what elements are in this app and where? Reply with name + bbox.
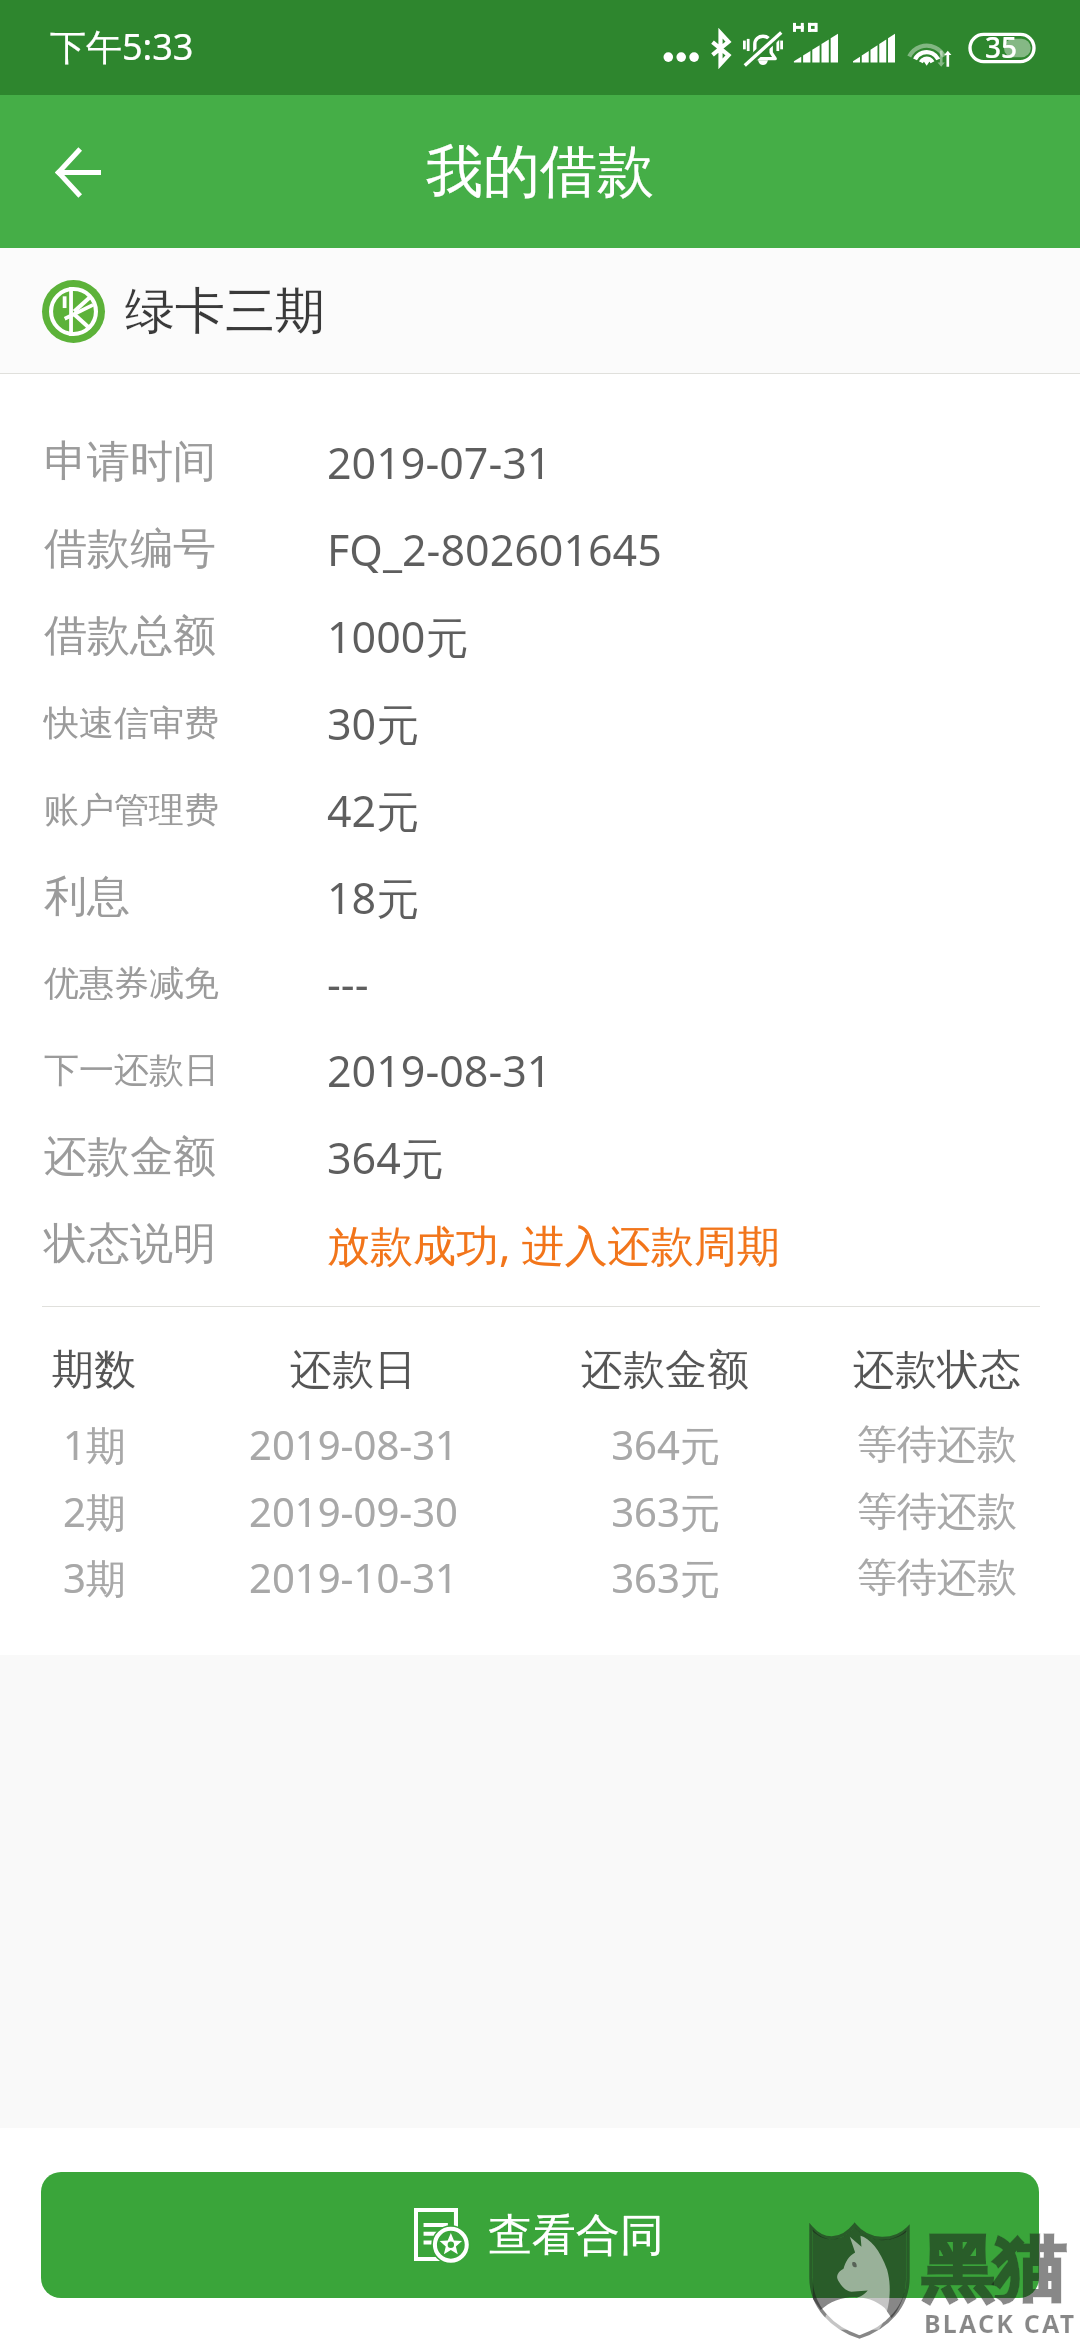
staticText: 364元 xyxy=(611,1417,720,1472)
staticText: 1000元 xyxy=(327,607,469,666)
staticText: 借款总额 xyxy=(44,609,216,663)
staticText: 2019-08-31 xyxy=(249,1417,458,1471)
staticText: 黑猫 xyxy=(921,2225,1065,2316)
staticText: 42元 xyxy=(327,781,420,840)
staticText: 30元 xyxy=(327,694,420,753)
staticText: 还款金额 xyxy=(44,1130,216,1184)
staticText: 优惠券减免 xyxy=(44,961,219,1005)
staticText: 下一还款日 xyxy=(44,1048,219,1092)
staticText: BLACK CAT xyxy=(924,2306,1077,2340)
staticText: 下午5:33 xyxy=(50,22,194,71)
staticText: 等待还款 xyxy=(857,1486,1017,1536)
staticText: 363元 xyxy=(611,1484,720,1539)
staticText: 18元 xyxy=(327,868,420,927)
staticText: 等待还款 xyxy=(857,1552,1017,1602)
staticText: 35 xyxy=(985,28,1018,66)
button[interactable]: 查看合同 xyxy=(41,2172,1039,2298)
staticText: 快速信审费 xyxy=(44,701,219,745)
staticText: 还款状态 xyxy=(853,1344,1021,1397)
staticText: 2019-07-31 xyxy=(327,433,552,492)
staticText: 利息 xyxy=(44,870,130,924)
staticText: 状态说明 xyxy=(44,1217,216,1271)
staticText: 期数 xyxy=(52,1344,136,1397)
staticText: 我的借款 xyxy=(426,136,654,208)
staticText: --- xyxy=(327,954,369,1013)
staticText: 申请时间 xyxy=(44,435,216,489)
button[interactable]: Back xyxy=(22,116,134,228)
staticText: 2期 xyxy=(63,1484,126,1539)
staticText: 放款成功, 进入还款周期 xyxy=(327,1215,780,1274)
staticText: 2019-08-31 xyxy=(327,1041,552,1100)
staticText: 等待还款 xyxy=(857,1419,1017,1469)
staticText: 账户管理费 xyxy=(44,788,219,832)
staticText: FQ_2-802601645 xyxy=(327,520,662,579)
staticText: 364元 xyxy=(327,1128,444,1187)
staticText: 借款编号 xyxy=(44,522,216,576)
staticText: 绿卡三期 xyxy=(125,280,325,343)
staticText: 1期 xyxy=(63,1417,126,1472)
staticText: 还款日 xyxy=(290,1344,416,1397)
staticText: 2019-10-31 xyxy=(249,1550,458,1604)
staticText: 查看合同 xyxy=(488,2208,664,2263)
staticText: 2019-09-30 xyxy=(249,1484,458,1538)
staticText: 363元 xyxy=(611,1550,720,1605)
staticText: 还款金额 xyxy=(581,1344,749,1397)
staticText: 3期 xyxy=(63,1550,126,1605)
button[interactable]: 绿卡三期 xyxy=(0,248,1080,374)
